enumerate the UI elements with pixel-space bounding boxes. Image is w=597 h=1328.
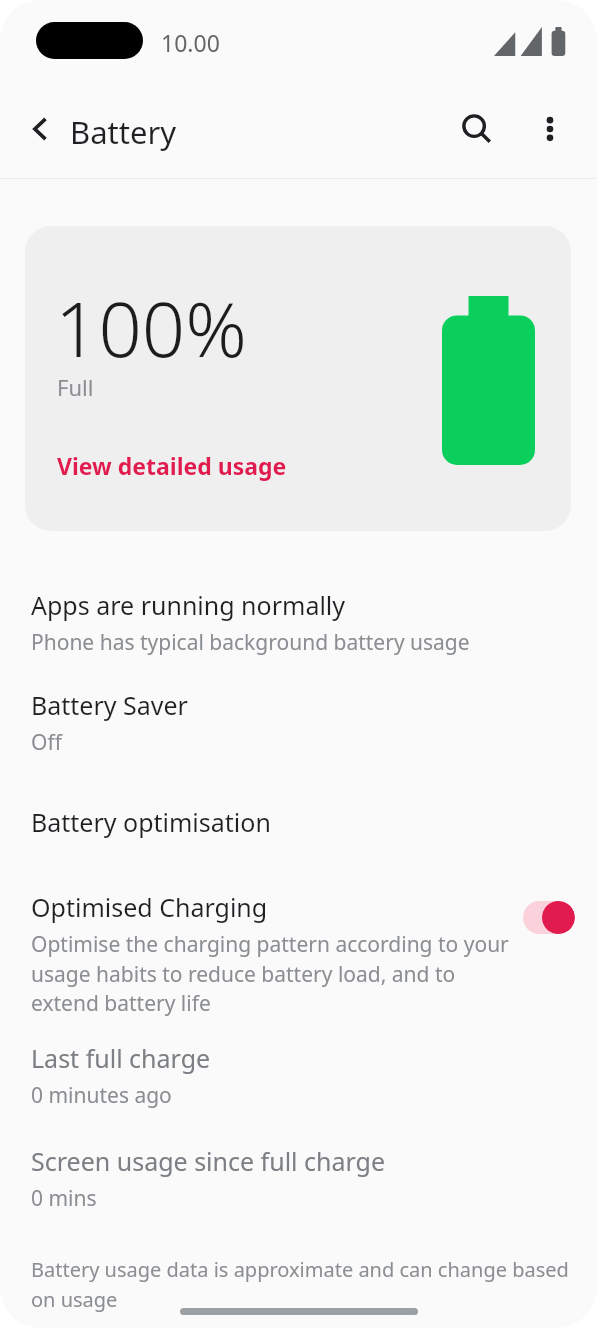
staticText: Optimise the charging pattern according … [31, 930, 511, 1017]
staticText: Off [31, 728, 62, 757]
button[interactable]: Battery Saver [0, 688, 597, 757]
staticText: View detailed usage [57, 450, 287, 481]
button[interactable]: Optimised Charging toggle [523, 901, 575, 934]
button[interactable]: Search [453, 105, 501, 153]
button[interactable]: Optimised Charging [0, 890, 597, 1017]
staticText: Battery optimisation [31, 805, 271, 839]
button[interactable]: Back [17, 105, 65, 153]
staticText: Phone has typical background battery usa… [31, 628, 470, 657]
staticText: Battery Saver [31, 688, 188, 722]
button[interactable]: Screen usage since full charge [0, 1144, 597, 1213]
staticText: Battery usage data is approximate and ca… [31, 1256, 583, 1313]
staticText: 10.00 [161, 27, 220, 58]
staticText: 0 mins [31, 1184, 97, 1213]
staticText: Optimised Charging [31, 890, 268, 924]
button[interactable]: More options [526, 105, 574, 153]
button[interactable]: View detailed usage [57, 448, 287, 483]
staticText: Screen usage since full charge [31, 1144, 386, 1178]
button[interactable]: Battery optimisation [0, 805, 597, 839]
staticText: Apps are running normally [31, 588, 346, 622]
staticText: Full [57, 372, 94, 402]
button[interactable]: Apps are running normally [0, 588, 597, 657]
staticText: Battery [70, 111, 177, 153]
staticText: 100% [55, 276, 247, 380]
button[interactable]: Last full charge [0, 1041, 597, 1110]
staticText: Last full charge [31, 1041, 211, 1075]
staticText: 0 minutes ago [31, 1081, 172, 1110]
